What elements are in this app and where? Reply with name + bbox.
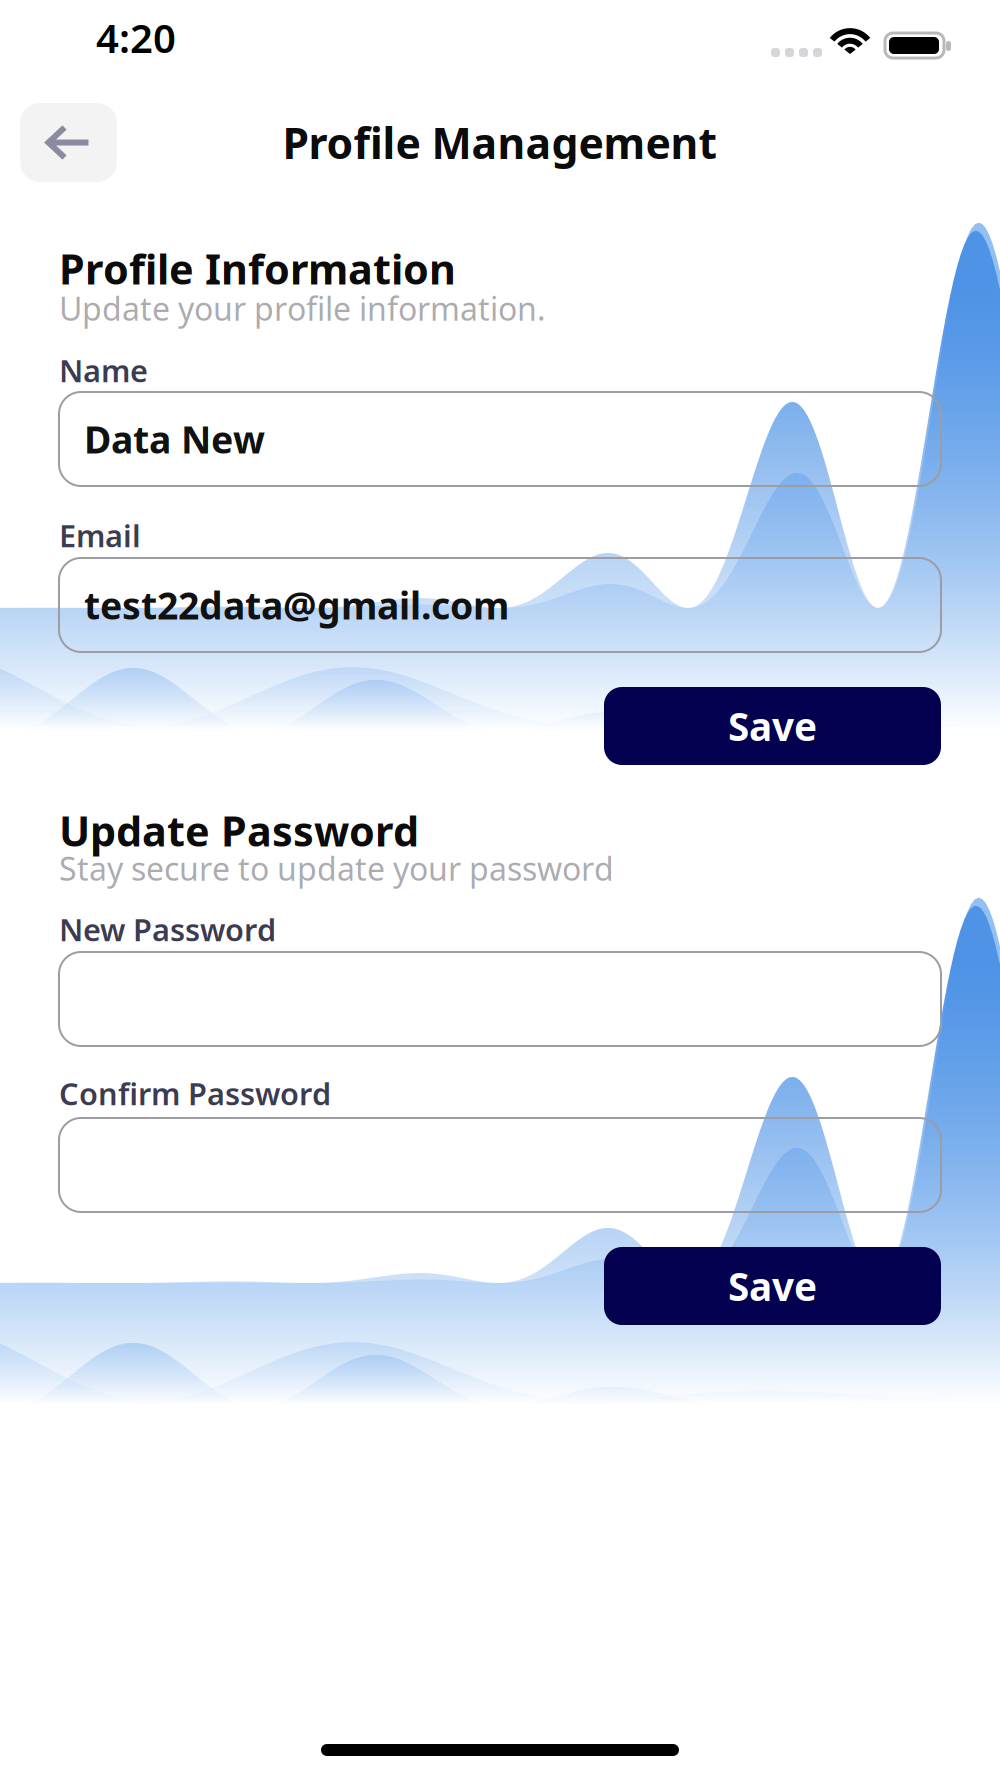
button[interactable]: Save [604,687,941,765]
staticText: Profile Information [59,241,456,296]
staticText: New Password [59,909,276,950]
staticText: Update your profile information. [59,287,546,329]
button[interactable]: Back [20,103,117,182]
staticText: Stay secure to update your password [59,847,614,889]
staticText: Data New [84,414,265,464]
staticText: Email [59,515,141,556]
staticText: test22data@gmail.com [84,580,509,630]
staticText: Name [59,350,148,391]
staticText: Confirm Password [59,1073,331,1114]
staticText: Profile Management [282,114,717,171]
staticText: 4:20 [96,11,176,64]
staticText: Save [728,700,817,752]
staticText: Update Password [59,803,419,858]
button[interactable]: Save [604,1247,941,1325]
staticText: Save [728,1260,817,1312]
